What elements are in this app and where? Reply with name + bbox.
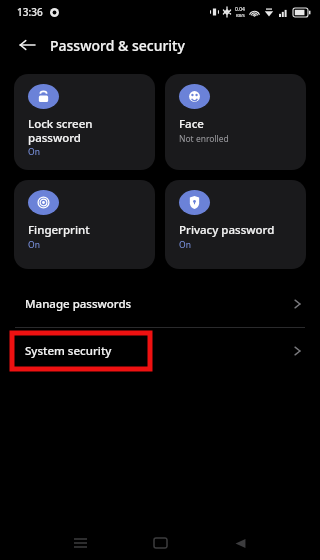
button[interactable]: Fingerprint <box>14 180 155 269</box>
staticText: Lock screen password <box>28 116 93 145</box>
staticText: Privacy password <box>179 222 275 238</box>
button[interactable]: Home <box>144 527 176 559</box>
staticText: KB/S <box>236 13 245 18</box>
button[interactable]: Back <box>224 527 256 559</box>
staticText: 0.04 <box>235 6 245 13</box>
staticText: On <box>179 239 191 251</box>
button[interactable]: Recents <box>64 527 96 559</box>
button[interactable]: Lock screen password <box>14 74 155 170</box>
button[interactable]: Face <box>165 74 306 170</box>
button[interactable]: System security <box>0 328 320 374</box>
staticText: On <box>28 239 40 251</box>
staticText: Password & security <box>50 36 185 55</box>
staticText: Face <box>179 116 204 132</box>
staticText: Not enrolled <box>179 133 229 145</box>
staticText: Fingerprint <box>28 222 90 238</box>
button[interactable]: Back <box>12 30 42 60</box>
button[interactable]: Privacy password <box>165 180 306 269</box>
staticText: Manage passwords <box>25 296 132 312</box>
staticText: On <box>28 146 40 158</box>
button[interactable]: Manage passwords <box>0 281 320 327</box>
staticText: System security <box>25 343 112 359</box>
staticText: 13:36 <box>17 5 43 19</box>
